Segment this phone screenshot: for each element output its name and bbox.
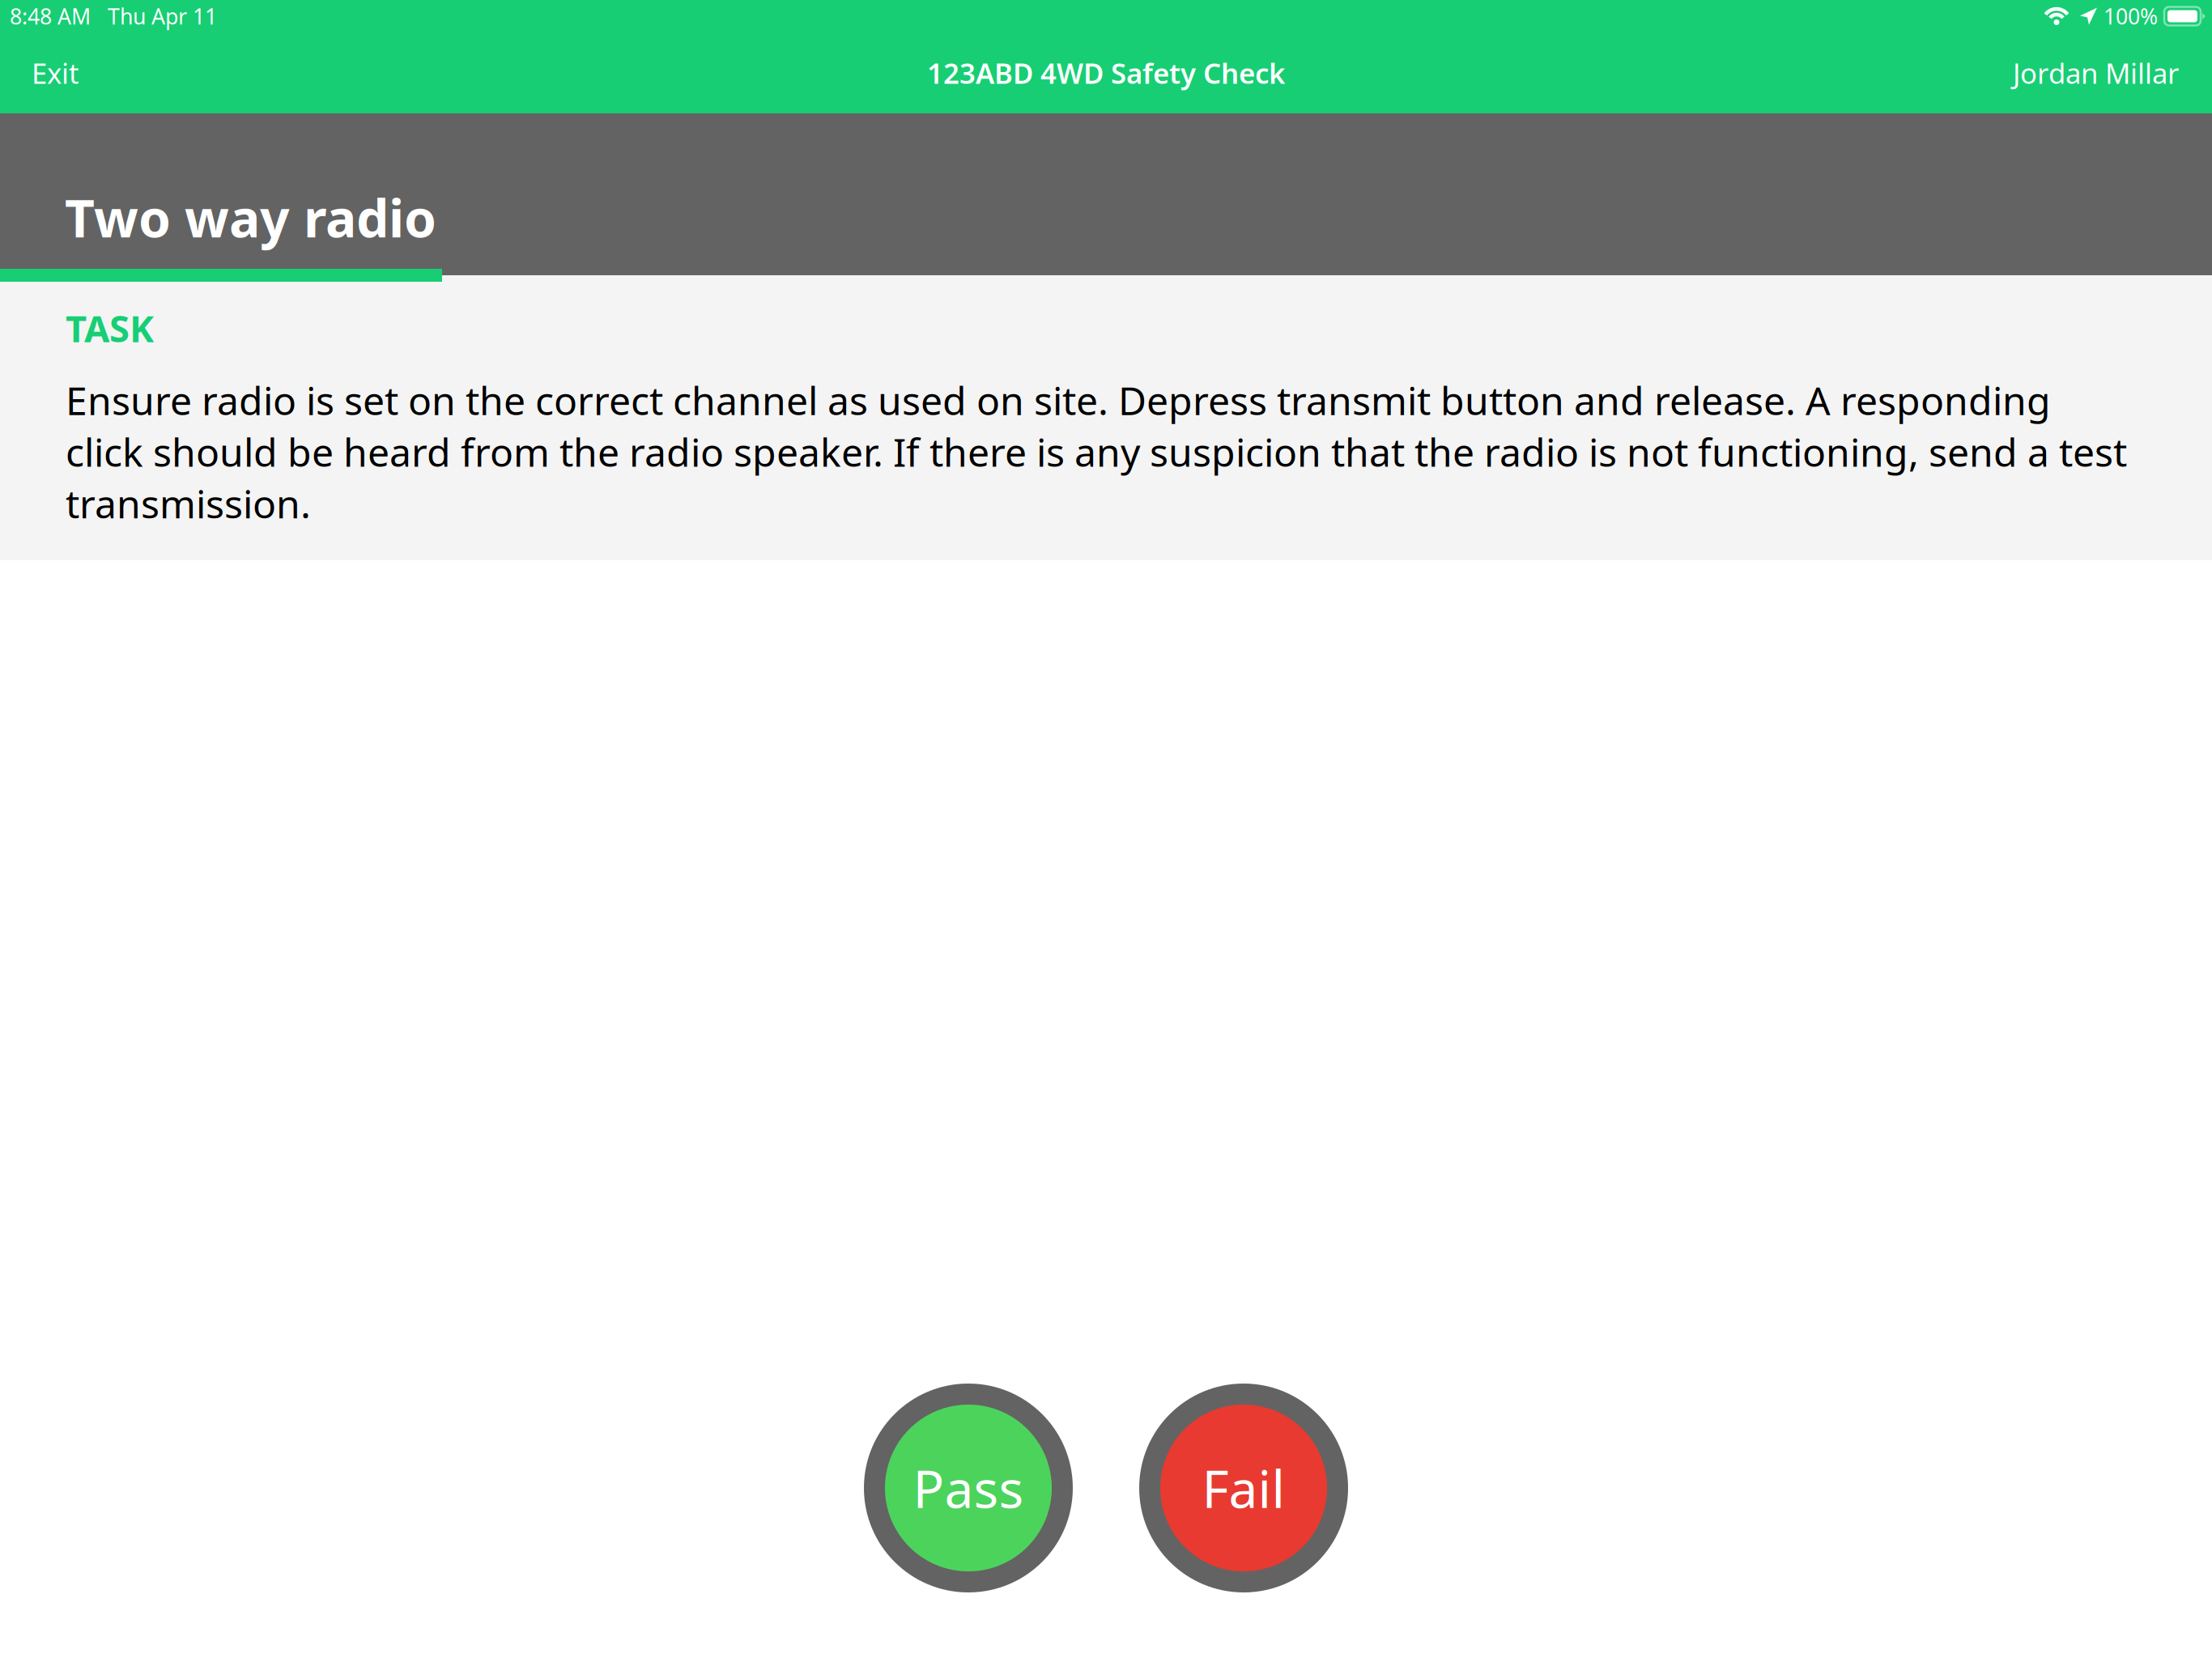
staticText: Ensure radio is set on the correct chann… xyxy=(66,374,2127,529)
button[interactable]: Pass xyxy=(864,1384,1073,1592)
staticText: Two way radio xyxy=(65,183,436,252)
staticText: Jordan Millar xyxy=(2013,54,2179,91)
button[interactable]: Jordan Millar xyxy=(2013,54,2179,91)
staticText: TASK xyxy=(66,304,154,352)
staticText: 123ABD 4WD Safety Check xyxy=(927,54,1285,91)
button[interactable]: Fail xyxy=(1139,1384,1348,1592)
staticText: Pass xyxy=(913,1454,1024,1522)
staticText: Thu Apr 11 xyxy=(108,2,217,31)
button[interactable]: Exit xyxy=(32,54,79,91)
staticText: 100% xyxy=(2104,2,2158,31)
staticText: Exit xyxy=(32,54,79,91)
staticText: 8:48 AM xyxy=(10,2,91,31)
staticText: Fail xyxy=(1202,1454,1285,1522)
